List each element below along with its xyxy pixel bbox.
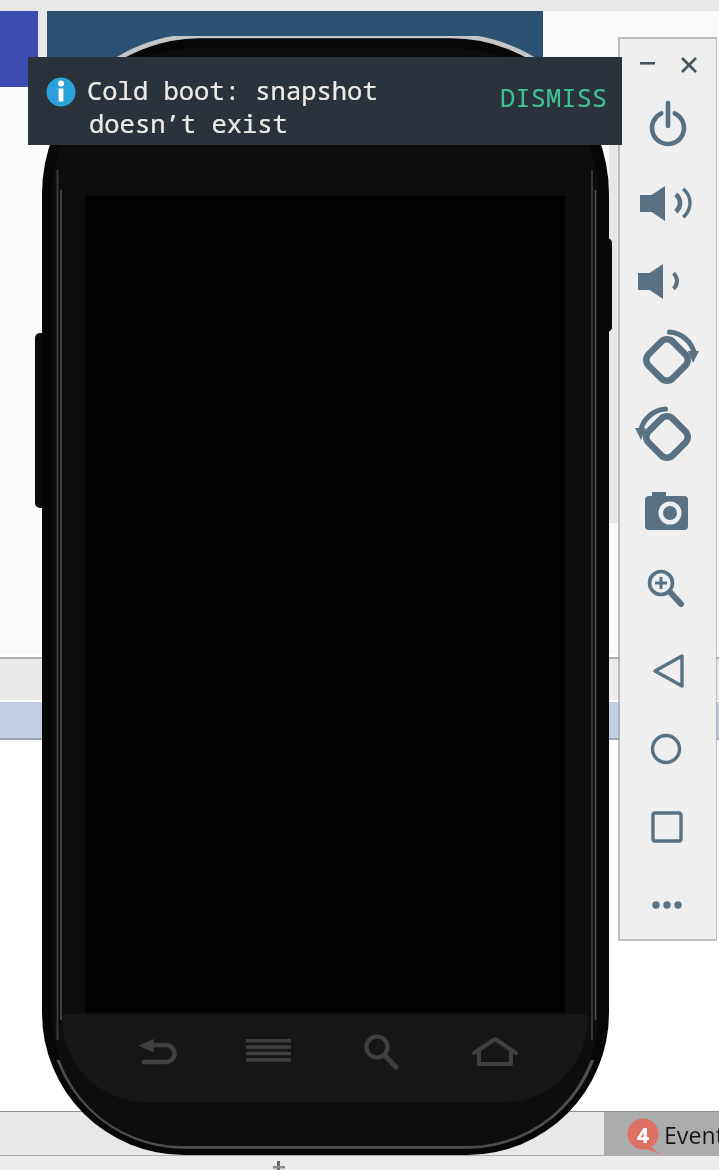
button[interactable]: DISMISS bbox=[488, 72, 616, 112]
button[interactable] bbox=[634, 52, 660, 74]
button[interactable] bbox=[644, 881, 692, 929]
button[interactable] bbox=[354, 1028, 402, 1076]
button[interactable] bbox=[132, 1028, 180, 1076]
button[interactable] bbox=[644, 725, 692, 773]
staticText: 4 bbox=[637, 1121, 650, 1150]
button[interactable] bbox=[644, 803, 692, 851]
button[interactable] bbox=[471, 1028, 519, 1076]
button[interactable] bbox=[622, 1112, 719, 1155]
button[interactable] bbox=[644, 102, 692, 150]
staticText: doesn’t exist bbox=[89, 106, 288, 141]
button[interactable] bbox=[644, 179, 692, 227]
button[interactable] bbox=[644, 567, 692, 615]
staticText: Cold boot: snapshot bbox=[87, 73, 378, 108]
staticText: DISMISS bbox=[500, 80, 608, 115]
button[interactable] bbox=[244, 1028, 292, 1076]
button[interactable] bbox=[644, 413, 692, 461]
staticText: Event bbox=[664, 1119, 719, 1150]
button[interactable] bbox=[676, 52, 702, 74]
button[interactable] bbox=[644, 335, 692, 383]
button[interactable] bbox=[644, 489, 692, 537]
button[interactable] bbox=[644, 257, 692, 305]
button[interactable] bbox=[644, 647, 692, 695]
